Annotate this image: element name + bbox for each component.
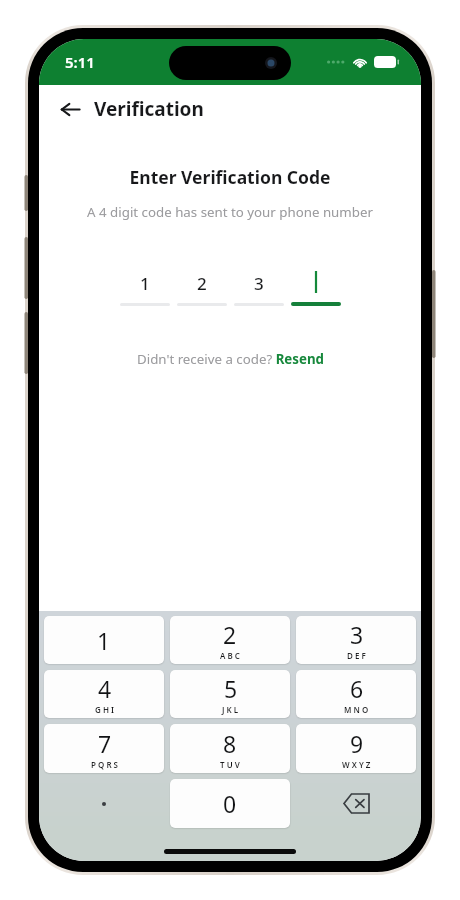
button[interactable]: 1 — [120, 270, 170, 306]
staticText: 6 — [350, 673, 364, 704]
button[interactable]: 2 — [177, 270, 227, 306]
staticText: A B C — [220, 650, 240, 661]
staticText: 9 — [350, 728, 364, 759]
button[interactable]: 5 — [170, 670, 290, 718]
button[interactable]: Period — [44, 779, 164, 828]
button[interactable] — [291, 269, 341, 306]
button[interactable]: 7 — [44, 724, 164, 773]
staticText: Verification — [94, 96, 204, 122]
staticText: 1 — [140, 272, 150, 295]
staticText: 2 — [197, 272, 207, 295]
staticText: P Q R S — [91, 759, 118, 770]
button[interactable]: 3 — [296, 616, 416, 664]
staticText: 0 — [223, 788, 237, 819]
staticText: G H I — [95, 704, 114, 715]
button[interactable]: 0 — [170, 779, 290, 828]
button[interactable]: 6 — [296, 670, 416, 718]
staticText: M N O — [344, 704, 369, 715]
staticText: 3 — [254, 272, 264, 295]
staticText: 5:11 — [65, 52, 95, 72]
button[interactable]: 8 — [170, 724, 290, 773]
staticText: D E F — [347, 650, 366, 661]
staticText: J K L — [222, 704, 239, 715]
button[interactable]: Backspace — [296, 779, 416, 828]
staticText: 7 — [98, 728, 112, 759]
staticText: 1 — [97, 625, 111, 656]
button[interactable]: Didn't receive a code? Resend — [137, 350, 324, 368]
staticText: T U V — [220, 759, 240, 770]
button[interactable]: 2 — [170, 616, 290, 664]
staticText: 2 — [223, 619, 237, 650]
staticText: 3 — [350, 619, 364, 650]
button[interactable]: 4 — [44, 670, 164, 718]
staticText: 5 — [224, 673, 238, 704]
staticText: Didn't receive a code? Resend — [137, 350, 324, 368]
staticText: 4 — [98, 673, 112, 704]
button[interactable]: 1 — [44, 616, 164, 664]
staticText: Enter Verification Code — [39, 165, 421, 189]
button[interactable]: 9 — [296, 724, 416, 773]
staticText: W X Y Z — [342, 759, 371, 770]
button[interactable]: 3 — [234, 270, 284, 306]
staticText: 8 — [223, 728, 237, 759]
staticText: A 4 digit code has sent to your phone nu… — [51, 203, 409, 221]
button[interactable]: Back — [53, 92, 87, 126]
